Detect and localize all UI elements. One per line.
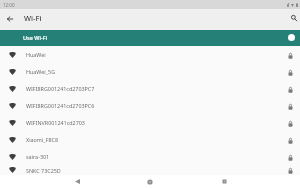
- button[interactable]: WIFI8RG001241cd2703PC7: [0, 80, 300, 97]
- button[interactable]: Xiaomi_F8C8: [0, 131, 300, 148]
- button[interactable]: Search: [286, 7, 300, 28]
- button[interactable]: Recent apps: [214, 175, 234, 188]
- staticText: HuaWei_5G: [26, 68, 56, 75]
- button[interactable]: WIFINVR001241cd2703: [0, 114, 300, 131]
- staticText: Xiaomi_F8C8: [26, 136, 59, 143]
- button[interactable]: SNKC 73C25D: [0, 165, 300, 175]
- staticText: WIFINVR001241cd2703: [26, 119, 85, 126]
- staticText: Wi-Fi: [24, 13, 42, 23]
- button[interactable]: WIFI8RG001241cd2703PC6: [0, 97, 300, 114]
- staticText: WIFI8RG001241cd2703PC7: [26, 85, 95, 92]
- button[interactable]: HuaWei_5G: [0, 63, 300, 80]
- staticText: Use Wi-Fi: [23, 34, 48, 41]
- button[interactable]: Home: [140, 175, 160, 188]
- button[interactable]: Navigate up: [0, 8, 19, 29]
- staticText: WIFI8RG001241cd2703PC6: [26, 102, 95, 109]
- button[interactable]: Back: [67, 175, 87, 188]
- staticText: SNKC 73C25D: [26, 167, 61, 174]
- button[interactable]: HuaWei: [0, 46, 300, 63]
- staticText: saira-301: [26, 153, 50, 160]
- button[interactable]: Use Wi-Fi: [0, 30, 300, 46]
- button[interactable]: saira-301: [0, 148, 300, 165]
- staticText: HuaWei: [26, 51, 46, 58]
- staticText: 12:00: [3, 2, 15, 8]
